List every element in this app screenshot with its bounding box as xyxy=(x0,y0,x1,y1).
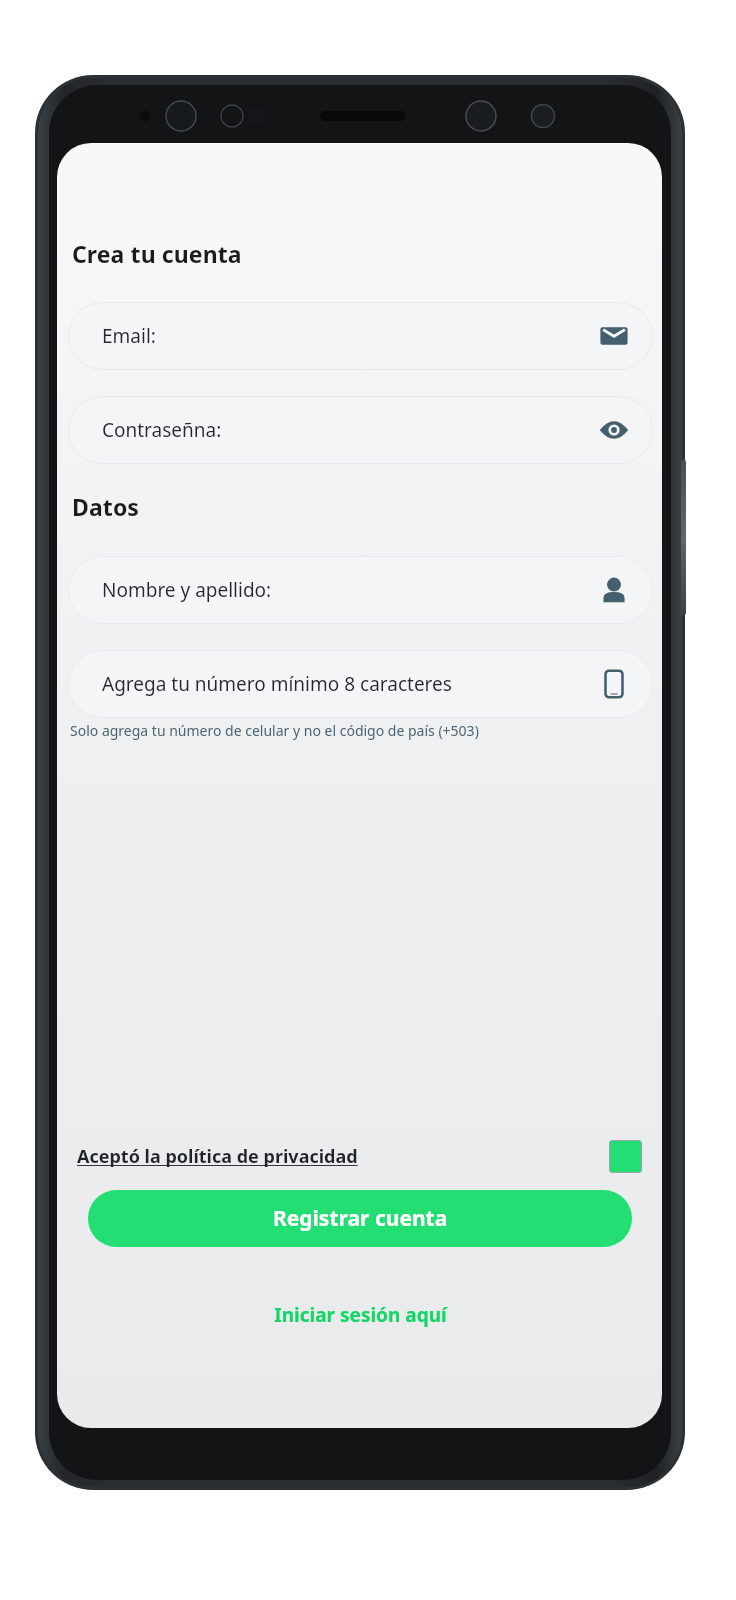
staticText: Registrar cuenta xyxy=(273,1204,448,1233)
button[interactable]: Agrega tu número mínimo 8 caracteres xyxy=(68,650,653,718)
button[interactable]: Nombre y apellido: xyxy=(68,556,653,624)
other: Nombre xyxy=(597,573,631,607)
button[interactable]: Iniciar sesión aquí xyxy=(88,1295,632,1335)
staticText: Datos xyxy=(72,491,140,522)
button[interactable]: Contraseñna: xyxy=(68,396,653,464)
staticText: Email: xyxy=(102,323,156,349)
staticText: Iniciar sesión aquí xyxy=(274,1302,447,1328)
other: Teléfono xyxy=(597,667,631,701)
staticText: Solo agrega tu número de celular y no el… xyxy=(70,721,479,740)
button[interactable]: Aceptar política de privacidad xyxy=(609,1140,642,1173)
other: Mostrar contraseña xyxy=(597,413,631,447)
other: Email xyxy=(597,319,631,353)
staticText: Contraseñna: xyxy=(102,417,222,443)
staticText: Aceptó la política de privacidad xyxy=(77,1144,358,1169)
button[interactable]: Registrar cuenta xyxy=(88,1190,632,1247)
button[interactable]: Email: xyxy=(68,302,653,370)
staticText: Nombre y apellido: xyxy=(102,577,272,603)
button[interactable]: Aceptó la política de privacidad xyxy=(77,1136,642,1176)
staticText: Agrega tu número mínimo 8 caracteres xyxy=(102,671,452,697)
staticText: Crea tu cuenta xyxy=(72,238,242,269)
